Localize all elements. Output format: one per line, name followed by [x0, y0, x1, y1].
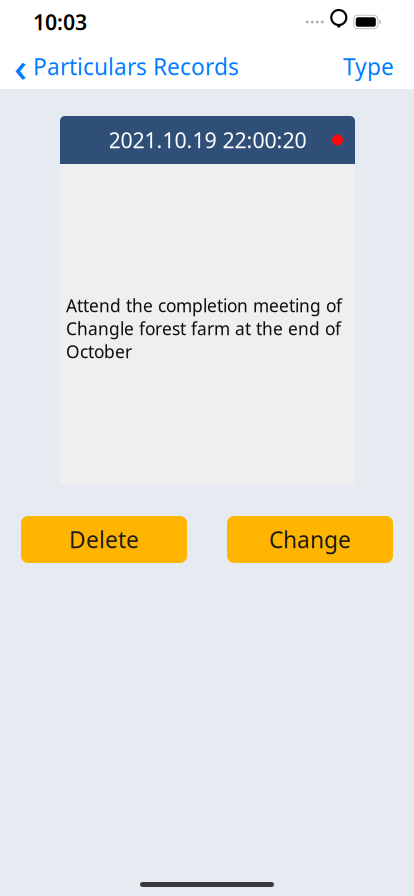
staticText: Delete: [69, 524, 139, 554]
button[interactable]: Delete: [21, 516, 187, 563]
button[interactable]: ‹: [0, 34, 239, 99]
staticText: Particulars Records: [33, 51, 239, 81]
button[interactable]: Type: [343, 43, 414, 89]
staticText: Type: [343, 51, 394, 81]
staticText: Change: [269, 524, 351, 554]
staticText: ‹: [14, 40, 27, 93]
button[interactable]: Change: [227, 516, 393, 563]
staticText: Attend the completion meeting of Changle…: [66, 294, 342, 363]
staticText: 2021.10.19 22:00:20: [108, 126, 306, 154]
staticText: 10:03: [33, 8, 87, 36]
